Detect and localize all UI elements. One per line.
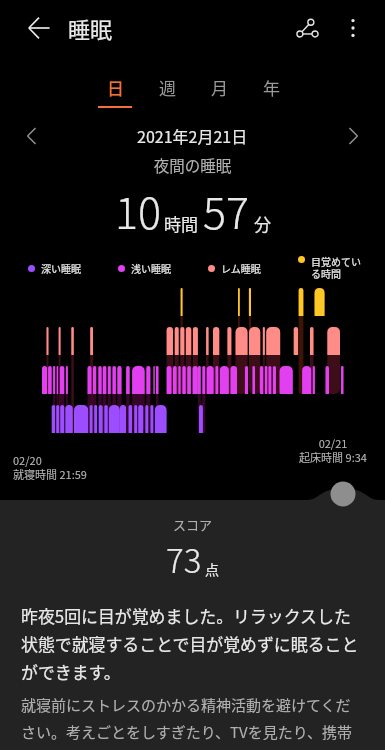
- button[interactable]: 年: [245, 56, 297, 108]
- button[interactable]: More options: [330, 5, 376, 51]
- staticText: 分: [254, 211, 271, 236]
- button[interactable]: Next day: [341, 124, 365, 148]
- staticText: スコア: [0, 515, 385, 534]
- staticText: 2021年2月21日: [137, 124, 248, 147]
- staticText: 02/20 就寝時間 21:59: [13, 452, 87, 482]
- staticText: 浅い睡眠: [131, 261, 171, 275]
- staticText: 日: [107, 75, 124, 100]
- staticText: 週: [159, 75, 176, 100]
- staticText: 就寝前にストレスのかかる精神活動を避けてください。考えごとをしすぎたり、TVを見…: [21, 694, 365, 750]
- staticText: 10: [115, 179, 162, 241]
- staticText: 目覚めてい る時間: [311, 254, 361, 281]
- button[interactable]: Previous day: [20, 124, 44, 148]
- staticText: 月: [211, 75, 228, 100]
- button[interactable]: 週: [141, 56, 193, 108]
- button[interactable]: 月: [193, 56, 245, 108]
- staticText: 睡眠: [68, 12, 113, 44]
- button[interactable]: Share: [284, 5, 330, 51]
- staticText: 点: [205, 559, 219, 579]
- staticText: 時間: [164, 211, 198, 236]
- staticText: 73: [166, 535, 202, 583]
- staticText: 57: [203, 179, 250, 241]
- button[interactable]: Back: [17, 6, 61, 50]
- staticText: 昨夜5回に目が覚めました。リラックスした状態で就寝することで目が覚めずに眠ること…: [21, 603, 364, 684]
- staticText: レム睡眠: [221, 261, 261, 275]
- staticText: 深い睡眠: [41, 261, 81, 275]
- staticText: 02/21 起床時間 9:34: [299, 435, 367, 465]
- button[interactable]: 日: [89, 56, 141, 108]
- staticText: 夜間の睡眠: [0, 154, 385, 176]
- staticText: 年: [263, 75, 280, 100]
